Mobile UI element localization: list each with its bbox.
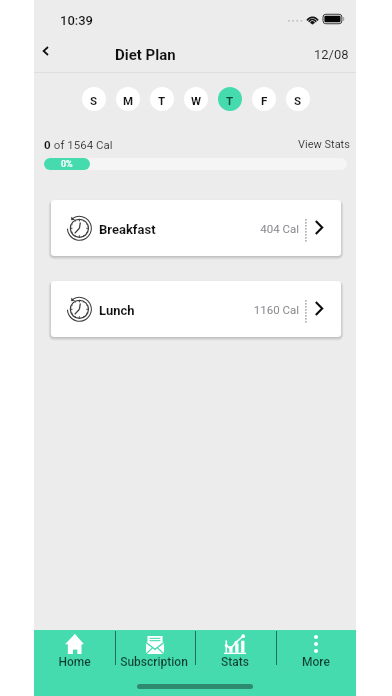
button[interactable]: Subscription bbox=[114, 630, 194, 675]
staticText: Stats bbox=[221, 655, 249, 669]
staticText: More bbox=[302, 655, 330, 669]
staticText: 1160 Cal bbox=[253, 303, 299, 316]
staticText: Lunch bbox=[99, 303, 135, 318]
button[interactable]: Back bbox=[34, 33, 72, 71]
staticText: W bbox=[191, 94, 202, 107]
staticText: 0 bbox=[44, 138, 51, 151]
staticText: Diet Plan bbox=[115, 46, 176, 64]
button[interactable]: T bbox=[150, 87, 174, 111]
button[interactable]: W bbox=[184, 87, 208, 111]
staticText: T bbox=[226, 94, 234, 107]
staticText: F bbox=[261, 94, 268, 107]
staticText: View Stats bbox=[298, 138, 350, 151]
staticText: S bbox=[294, 94, 302, 107]
staticText: of 1564 Cal bbox=[51, 138, 113, 151]
button[interactable]: Lunch bbox=[51, 281, 341, 337]
staticText: S bbox=[90, 94, 98, 107]
staticText: Subscription bbox=[120, 655, 188, 669]
staticText: 10:39 bbox=[60, 13, 93, 28]
staticText: M bbox=[123, 94, 134, 107]
button[interactable]: Stats bbox=[194, 630, 275, 675]
button[interactable]: Home bbox=[34, 630, 114, 675]
staticText: 0% bbox=[61, 159, 73, 170]
button[interactable]: F bbox=[252, 87, 276, 111]
staticText: Home bbox=[58, 655, 91, 669]
button[interactable]: S bbox=[82, 87, 106, 111]
button[interactable]: T bbox=[218, 87, 242, 111]
button[interactable]: View Stats bbox=[298, 138, 350, 151]
button[interactable]: S bbox=[286, 87, 310, 111]
staticText: T bbox=[158, 94, 166, 107]
staticText: 404 Cal bbox=[260, 222, 299, 235]
button[interactable]: Breakfast bbox=[51, 200, 341, 256]
staticText: 12/08 bbox=[314, 47, 349, 62]
button[interactable]: More bbox=[275, 630, 356, 675]
button[interactable]: M bbox=[116, 87, 140, 111]
staticText: Breakfast bbox=[99, 222, 156, 237]
